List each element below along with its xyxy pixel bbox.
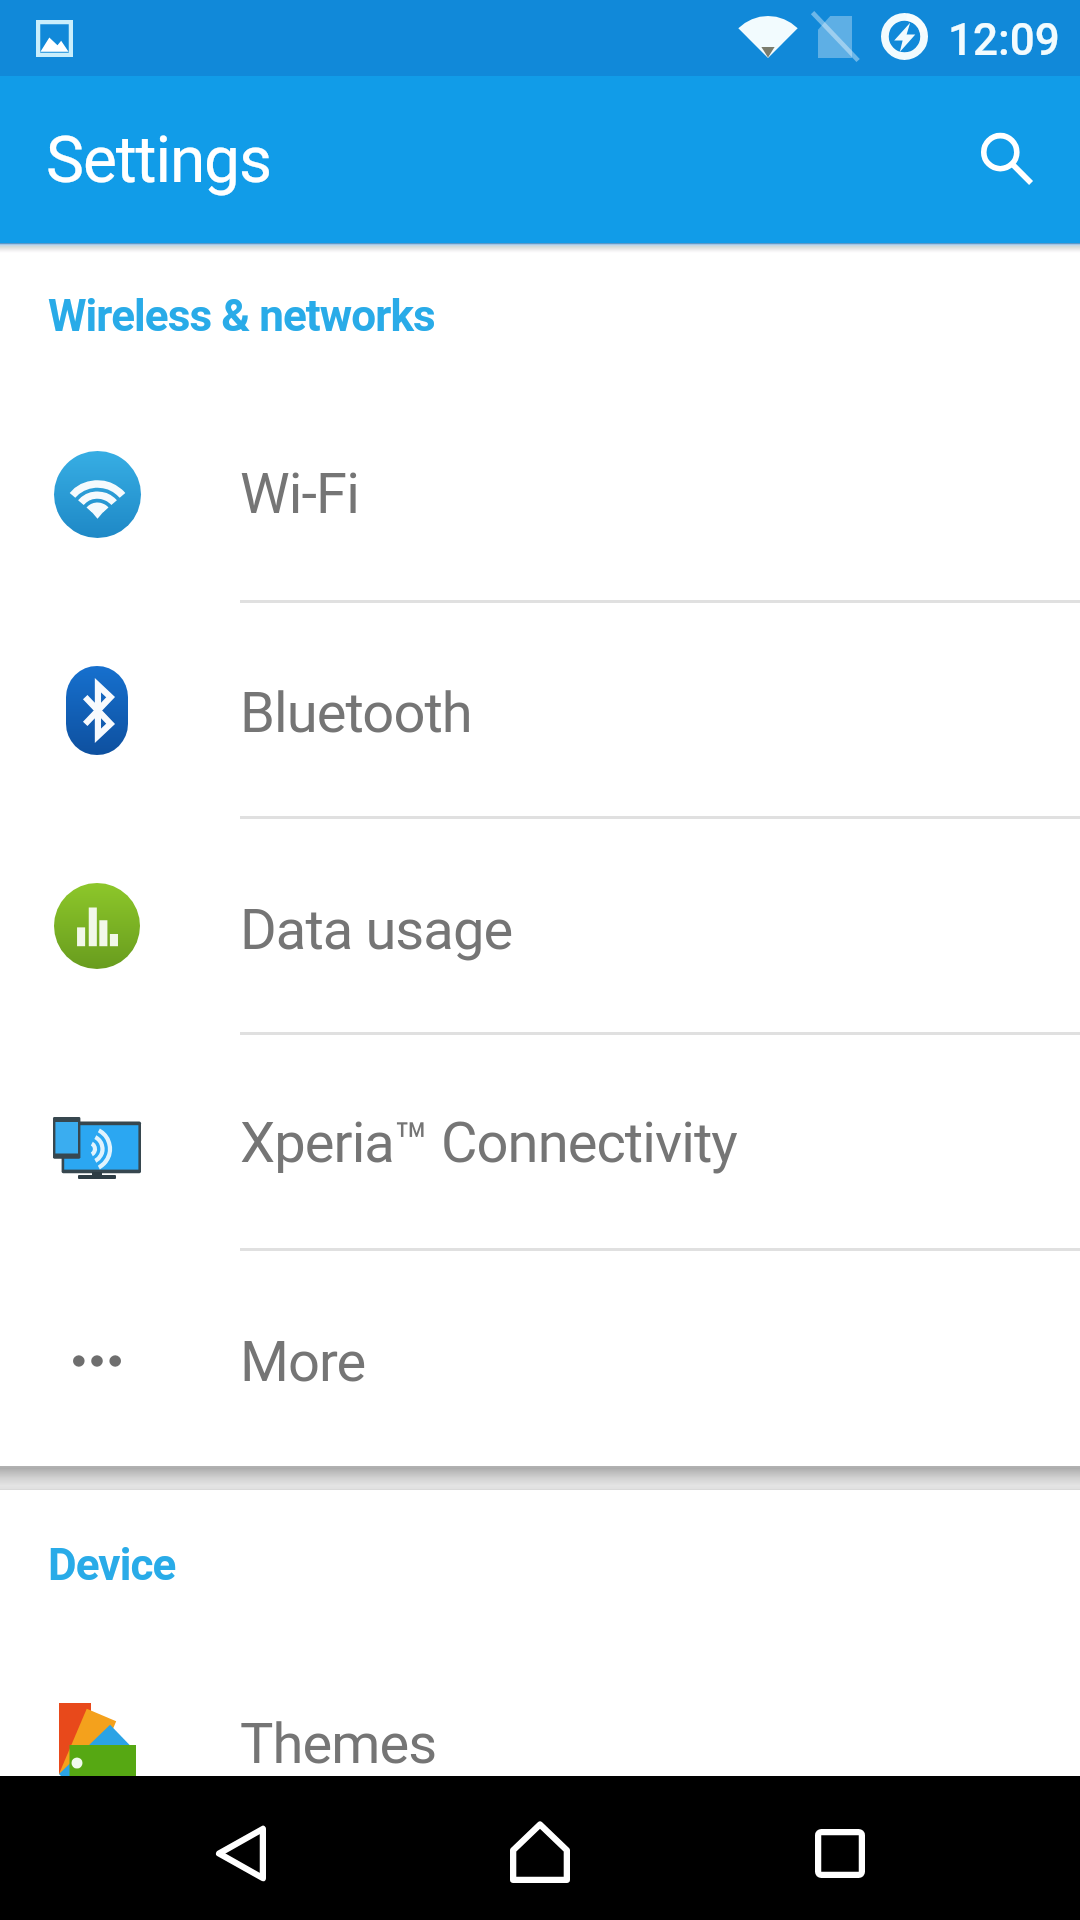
staticText: Wireless & networks (48, 290, 435, 342)
staticText: 12:09 (948, 14, 1060, 66)
button[interactable]: Bluetooth (0, 600, 1080, 816)
staticText: Bluetooth (240, 680, 472, 746)
button[interactable]: Wi-Fi (0, 384, 1080, 600)
button[interactable]: Home (467, 1776, 613, 1920)
button[interactable]: Xperia™ Connectivity (0, 1032, 1080, 1248)
staticText: Wi-Fi (240, 461, 359, 527)
staticText: Settings (46, 123, 271, 198)
staticText: Data usage (240, 897, 513, 963)
staticText: Themes (240, 1711, 437, 1777)
staticText: More (240, 1329, 366, 1395)
button[interactable]: Recent apps (767, 1776, 913, 1920)
button[interactable]: Themes (0, 1633, 1080, 1849)
staticText: Device (48, 1539, 176, 1591)
button[interactable]: Search (952, 105, 1062, 215)
button[interactable]: More (0, 1248, 1080, 1464)
staticText: Xperia™ Connectivity (240, 1110, 737, 1176)
button[interactable]: Data usage (0, 816, 1080, 1032)
button[interactable]: Back (168, 1776, 314, 1920)
